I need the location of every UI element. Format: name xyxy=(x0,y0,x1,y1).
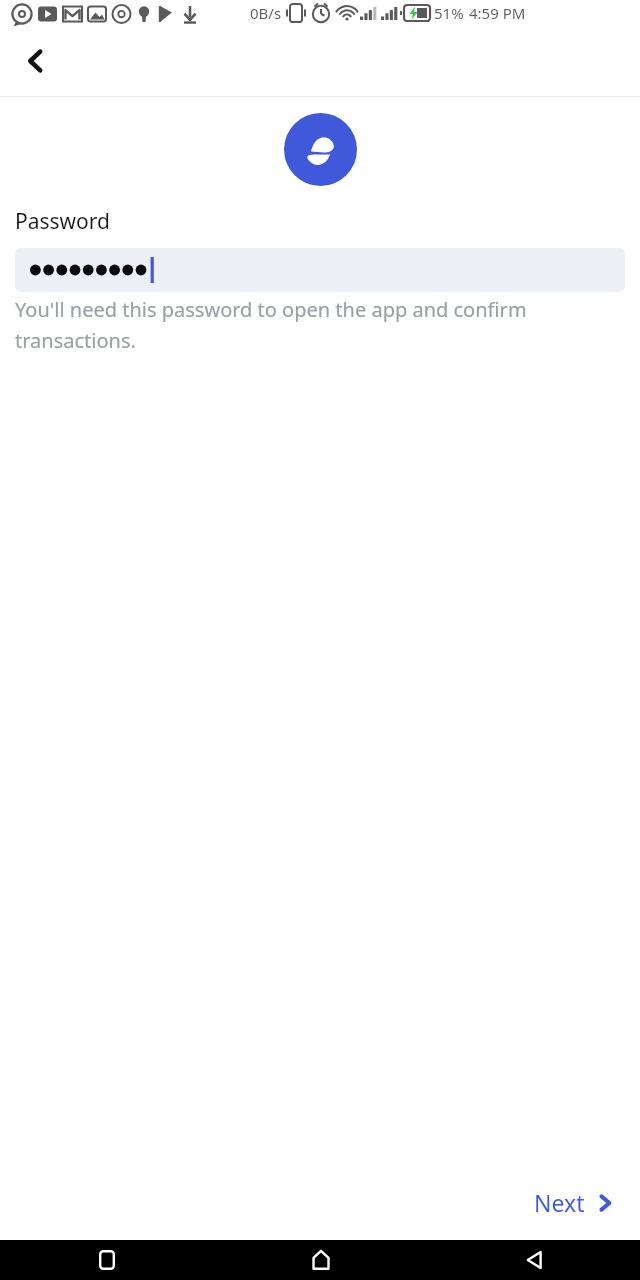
staticText: 4:59 PM xyxy=(469,3,526,23)
staticText: 0B/s xyxy=(250,3,282,23)
staticText: 51% xyxy=(434,3,464,23)
button[interactable]: Back xyxy=(8,33,64,89)
button[interactable]: Back xyxy=(427,1240,640,1280)
button[interactable]: Recent apps xyxy=(0,1240,214,1280)
button[interactable]: Next xyxy=(524,1179,626,1226)
staticText: Password xyxy=(15,207,110,236)
staticText: Next xyxy=(534,1187,585,1218)
button[interactable]: Home xyxy=(214,1240,427,1280)
staticText: You'll need this password to open the ap… xyxy=(15,296,625,354)
button[interactable]: Password input field xyxy=(15,248,625,292)
